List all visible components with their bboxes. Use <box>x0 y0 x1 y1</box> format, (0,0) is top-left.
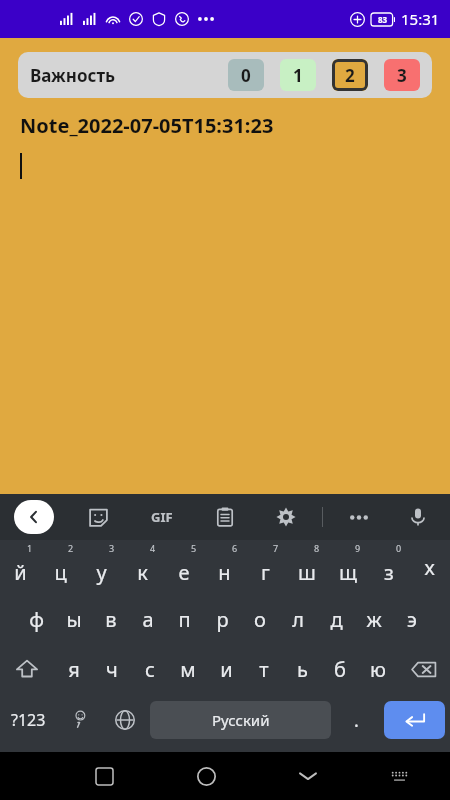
button[interactable]: Recents <box>82 754 126 798</box>
button[interactable]: о <box>241 594 279 644</box>
button[interactable]: Backspace <box>397 644 450 694</box>
staticText: я <box>68 656 80 683</box>
staticText: 0 <box>396 542 402 554</box>
button[interactable]: Enter <box>384 701 445 739</box>
staticText: 3 <box>109 542 115 554</box>
button[interactable]: Shift <box>0 644 54 694</box>
button[interactable]: б <box>321 644 359 694</box>
button[interactable]: д <box>317 594 355 644</box>
staticText: 7 <box>273 542 279 554</box>
button[interactable]: Clipboard <box>207 499 243 535</box>
staticText: т <box>259 656 269 683</box>
staticText: 1 <box>27 542 33 554</box>
button[interactable]: м <box>169 644 207 694</box>
staticText: п <box>178 606 191 633</box>
button[interactable]: я <box>54 644 93 694</box>
staticText: 9 <box>355 542 361 554</box>
staticText: г <box>261 559 270 586</box>
button[interactable]: Voice input <box>402 499 434 535</box>
button[interactable]: Emoji and comma <box>57 694 102 746</box>
staticText: 4 <box>150 542 156 554</box>
staticText: и <box>220 656 233 683</box>
button[interactable]: т <box>245 644 283 694</box>
staticText: 2 <box>68 542 74 554</box>
staticText: ы <box>66 606 82 633</box>
staticText: Note_2022-07-05T15:31:23 <box>20 112 274 139</box>
button[interactable]: п <box>166 594 203 644</box>
button[interactable]: 0 <box>368 540 409 594</box>
button[interactable]: с <box>131 644 169 694</box>
staticText: ж <box>366 606 382 633</box>
staticText: 0 <box>241 64 251 87</box>
button[interactable]: More options <box>341 499 377 535</box>
button[interactable]: ч <box>93 644 131 694</box>
button[interactable]: Settings <box>268 499 304 535</box>
staticText: ч <box>106 656 118 683</box>
staticText: л <box>292 606 304 633</box>
staticText: р <box>216 606 229 633</box>
staticText: н <box>218 559 231 586</box>
button[interactable]: 0 <box>228 59 264 91</box>
button[interactable]: Back <box>14 500 54 534</box>
staticText: щ <box>339 559 357 586</box>
button[interactable]: Home <box>184 754 228 798</box>
button[interactable]: л <box>279 594 317 644</box>
staticText: ш <box>298 559 316 586</box>
button[interactable]: GIF <box>142 497 182 537</box>
button[interactable]: 6 <box>204 540 245 594</box>
staticText: ц <box>54 559 67 586</box>
staticText: Русский <box>212 710 270 730</box>
button[interactable]: 2 <box>332 59 368 91</box>
button[interactable]: ж <box>355 594 393 644</box>
button[interactable]: 7 <box>245 540 286 594</box>
button[interactable]: в <box>92 594 129 644</box>
button[interactable]: а <box>129 594 166 644</box>
button[interactable]: 3 <box>81 540 122 594</box>
button[interactable]: 1 <box>0 540 40 594</box>
button[interactable]: Stickers <box>80 499 116 535</box>
staticText: ?123 <box>11 709 46 731</box>
staticText: м <box>180 656 196 683</box>
staticText: д <box>330 606 343 633</box>
staticText: а <box>142 606 154 633</box>
staticText: 1 <box>293 64 303 87</box>
staticText: й <box>14 559 27 586</box>
button[interactable]: х <box>409 540 450 594</box>
button[interactable]: и <box>207 644 245 694</box>
button[interactable]: Switch keyboard <box>377 754 421 798</box>
staticText: 15:31 <box>401 9 440 29</box>
button[interactable]: ь <box>283 644 321 694</box>
button[interactable]: 1 <box>280 59 316 91</box>
staticText: ю <box>370 656 386 683</box>
staticText: ь <box>297 656 308 683</box>
button[interactable]: 4 <box>122 540 163 594</box>
staticText: 6 <box>232 542 238 554</box>
button[interactable]: 8 <box>286 540 327 594</box>
staticText: ф <box>29 606 44 633</box>
staticText: к <box>137 559 148 586</box>
button[interactable]: ф <box>18 594 55 644</box>
button[interactable]: Русский <box>150 701 331 739</box>
staticText: х <box>424 554 435 581</box>
button[interactable]: ы <box>55 594 92 644</box>
button[interactable]: 5 <box>163 540 204 594</box>
button[interactable]: э <box>393 594 431 644</box>
button[interactable]: . <box>334 694 379 746</box>
staticText: . <box>354 708 359 733</box>
staticText: 5 <box>191 542 197 554</box>
staticText: з <box>384 559 394 586</box>
button[interactable]: 2 <box>40 540 81 594</box>
button[interactable]: ю <box>359 644 397 694</box>
button[interactable]: 3 <box>384 59 420 91</box>
button[interactable]: Change language <box>102 694 147 746</box>
button[interactable]: ?123 <box>0 694 57 746</box>
staticText: 2 <box>345 64 355 87</box>
staticText: 3 <box>397 64 407 87</box>
staticText: о <box>254 606 266 633</box>
button[interactable]: Hide keyboard <box>286 754 330 798</box>
staticText: э <box>407 606 417 633</box>
button[interactable]: р <box>203 594 241 644</box>
staticText: Важность <box>30 64 116 87</box>
button[interactable]: 9 <box>327 540 368 594</box>
staticText: у <box>96 559 107 586</box>
